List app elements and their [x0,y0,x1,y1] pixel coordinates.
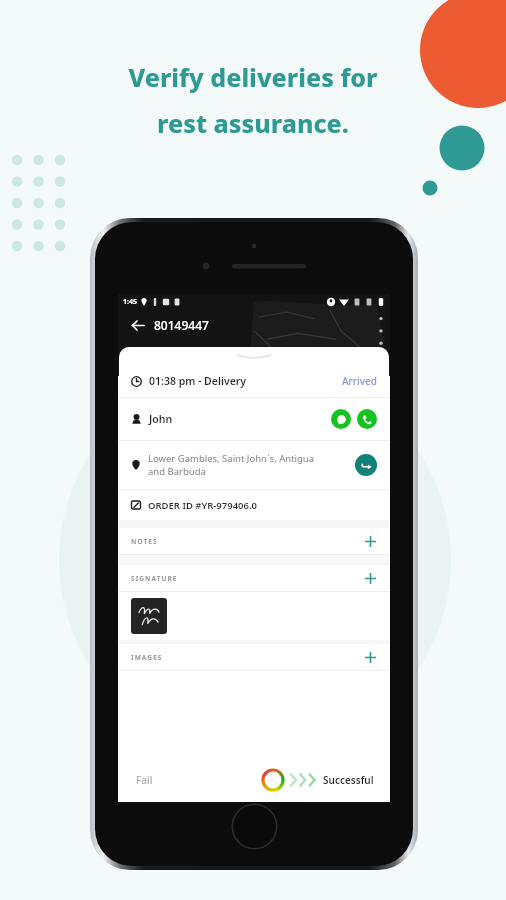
staticText: ORDER ID #YR-979406.0 [148,499,258,512]
staticText: IMAGES [131,653,163,662]
button[interactable]: Slide to mark successful [261,768,285,792]
staticText: 1:45 [123,297,137,307]
button[interactable]: Add NOTES [363,534,377,548]
staticText: Verify deliveries for [128,60,378,94]
button[interactable]: Navigate [355,454,377,476]
staticText: 01:38 pm - Delivery [149,374,247,388]
button[interactable]: Successful [321,771,376,789]
staticText: Lower Gambles, Saint John`s, Antigua and… [148,452,349,478]
button[interactable]: Home [231,803,278,850]
button[interactable]: Back [126,314,148,336]
button[interactable]: ORDER ID #YR-979406.0 [119,490,389,520]
button[interactable]: Call [357,409,377,429]
button[interactable]: SIGNATURE [119,565,389,591]
staticText: Arrived [342,374,377,388]
button[interactable]: Add IMAGES [363,650,377,664]
staticText: SIGNATURE [131,574,178,583]
button[interactable]: NOTES [119,528,389,554]
staticText: 80149447 [154,317,209,333]
button[interactable]: John [119,398,389,440]
button[interactable]: IMAGES [119,644,389,670]
staticText: rest assurance. [157,106,349,140]
button[interactable]: 01:38 pm - Delivery [119,365,389,397]
button[interactable]: Lower Gambles, Saint John`s, Antigua and… [119,441,389,489]
staticText: NOTES [131,537,158,546]
button[interactable]: Fail [132,769,157,791]
button[interactable]: Chat [331,409,351,429]
staticText: John [149,412,173,426]
button[interactable] [131,598,167,634]
button[interactable]: Add SIGNATURE [363,571,377,585]
